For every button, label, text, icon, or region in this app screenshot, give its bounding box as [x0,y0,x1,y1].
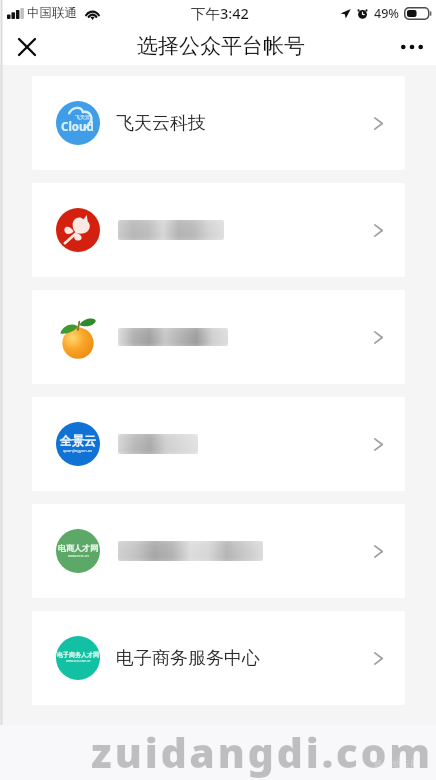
staticText: Cloud [61,119,94,135]
button[interactable]: More options [392,26,432,65]
staticText: 飞天云科技 [116,112,206,135]
staticText: 电子商务服务中心 [116,647,260,670]
staticText: 全景云 [60,433,96,448]
button[interactable]: Close [7,26,47,65]
button[interactable] [32,183,405,277]
staticText: 选择公众平台帐号 [137,33,305,59]
staticText: 49% [374,5,399,22]
staticText: 最当地云网 [374,758,419,769]
staticText: 电子商务人才网 [57,651,99,659]
staticText: www.ecrc.cn [68,553,89,558]
button[interactable]: 电子商务人才网 [32,611,405,705]
button[interactable]: 飞天云 [32,76,405,170]
staticText: quanjingyun.cn [63,448,93,453]
staticText: zuidangdi.com [91,724,433,780]
staticText: 下午3:42 [191,3,249,23]
staticText: 电商人才网 [58,543,98,553]
button[interactable]: 电商人才网 [32,504,405,598]
staticText: 中国联通 [27,5,77,21]
staticText: 飞天云 [75,114,90,120]
button[interactable]: 全景云 [32,397,405,491]
staticText: www.ecrc.com.cn [66,659,91,663]
button[interactable] [32,290,405,384]
